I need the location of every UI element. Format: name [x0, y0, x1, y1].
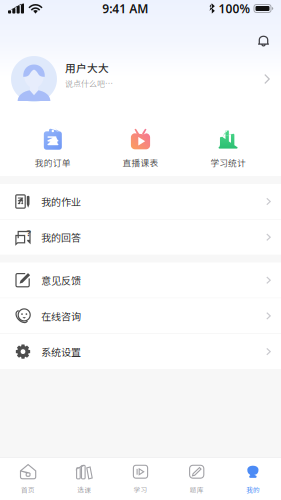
button[interactable]: 我的: [225, 458, 281, 500]
button[interactable]: 学习统计: [184, 105, 272, 178]
staticText: ?: [26, 226, 30, 239]
button[interactable]: 我的订单: [9, 105, 97, 178]
staticText: 我的作业: [41, 194, 81, 209]
button[interactable]: 用户大大: [0, 51, 281, 107]
button[interactable]: 学习: [112, 458, 169, 500]
button[interactable]: 选课: [56, 458, 112, 500]
staticText: 9:41 AM: [102, 0, 148, 16]
button[interactable]: Notifications: [253, 30, 274, 51]
button[interactable]: 意见反馈: [0, 263, 281, 298]
staticText: 学习: [133, 485, 147, 494]
button[interactable]: 首页: [0, 458, 56, 500]
staticText: 说点什么吧…: [65, 77, 113, 89]
staticText: 在线咨询: [41, 309, 81, 323]
staticText: 100%: [218, 0, 250, 16]
staticText: 系统设置: [41, 344, 81, 359]
staticText: 直播课表: [122, 156, 158, 169]
button[interactable]: ?: [0, 220, 281, 255]
staticText: 用户大大: [65, 60, 109, 75]
staticText: 意见反馈: [41, 273, 81, 287]
staticText: 学习统计: [210, 156, 246, 169]
button[interactable]: 系统设置: [0, 334, 281, 369]
button[interactable]: 在线咨询: [0, 298, 281, 333]
button[interactable]: 题库: [169, 458, 225, 500]
button[interactable]: 我的作业: [0, 184, 281, 219]
staticText: 我的: [246, 485, 260, 494]
button[interactable]: 直播课表: [97, 105, 184, 178]
staticText: 题库: [190, 485, 204, 494]
staticText: 我的回答: [41, 230, 81, 244]
staticText: 首页: [21, 485, 35, 494]
staticText: 选课: [77, 485, 91, 494]
staticText: 我的订单: [35, 156, 71, 169]
